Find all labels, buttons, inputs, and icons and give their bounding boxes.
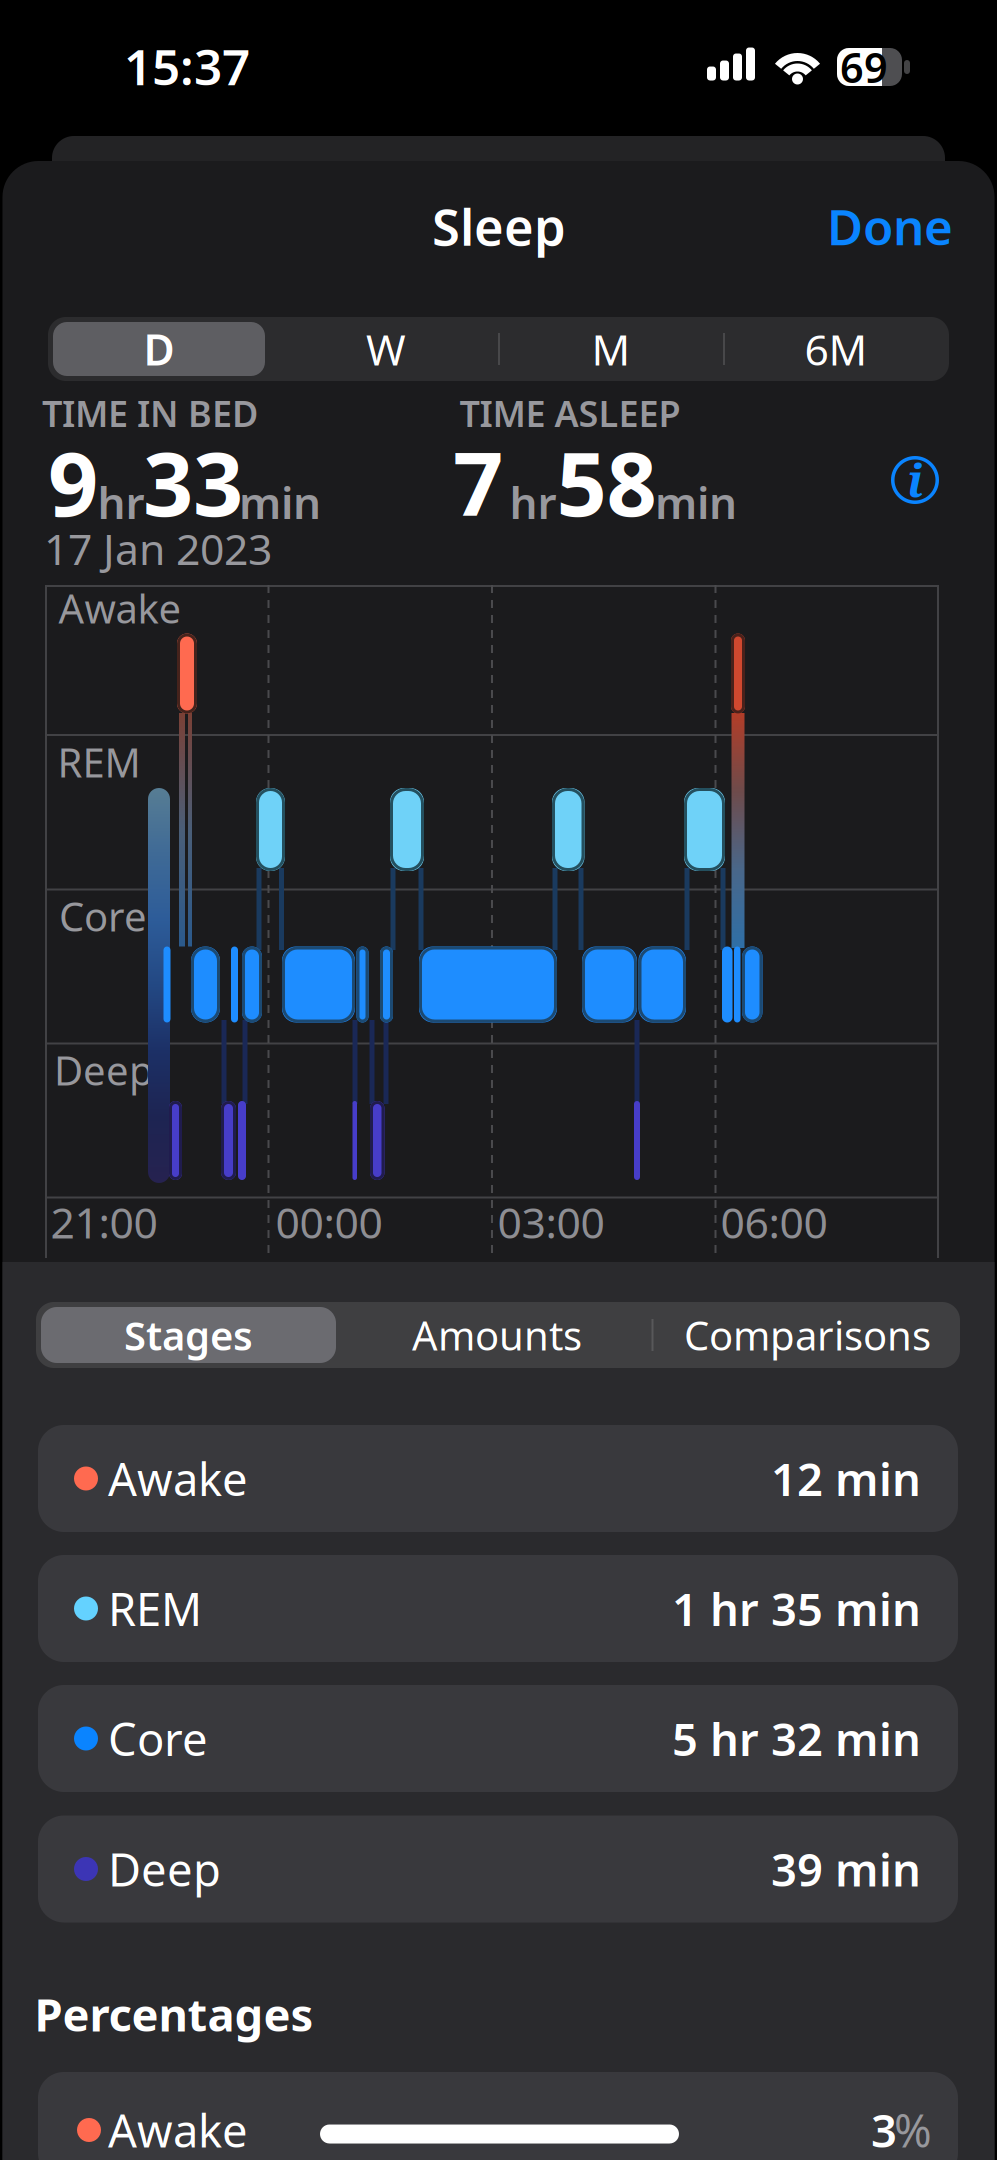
staticText: 33 (143, 424, 243, 540)
staticText: % (894, 2100, 932, 2160)
staticText: 15:37 (124, 33, 250, 99)
staticText: hr (97, 473, 144, 531)
button[interactable]: Comparisons (660, 1307, 955, 1363)
staticText: Stages (124, 1308, 253, 1361)
staticText: 00:00 (275, 1194, 382, 1250)
staticText: 17 Jan 2023 (44, 520, 272, 577)
staticText: Deep (54, 1043, 154, 1096)
staticText: REM (108, 1578, 202, 1639)
staticText: M (591, 321, 630, 377)
staticText: D (143, 321, 174, 377)
staticText: 1 hr 35 min (672, 1578, 921, 1639)
staticText: 3 (871, 2100, 897, 2160)
staticText: Amounts (412, 1308, 582, 1361)
staticText: REM (57, 735, 140, 788)
staticText: Deep (108, 1839, 221, 1899)
button[interactable]: M (505, 322, 717, 376)
button[interactable]: More info (891, 456, 939, 504)
staticText: 12 min (771, 1448, 921, 1509)
staticText: Comparisons (684, 1308, 931, 1361)
button[interactable]: Amounts (349, 1307, 644, 1363)
button[interactable]: Done (0, 0, 997, 280)
staticText: 5 hr 32 min (672, 1708, 921, 1769)
staticText: 21:00 (50, 1194, 157, 1250)
staticText: Core (108, 1708, 208, 1769)
button[interactable]: W (280, 322, 492, 376)
staticText: TIME IN BED (42, 389, 258, 437)
staticText: Awake (108, 1448, 248, 1509)
staticText: 7 (453, 424, 503, 540)
staticText: 69 (840, 40, 888, 94)
staticText: TIME ASLEEP (459, 389, 680, 437)
staticText: Done (827, 193, 953, 259)
button[interactable]: 6M (730, 322, 942, 376)
staticText: Awake (108, 2100, 248, 2160)
staticText: hr (509, 473, 556, 531)
staticText: min (239, 473, 321, 531)
staticText: i (907, 449, 923, 511)
button[interactable]: D (53, 322, 265, 376)
staticText: Sleep (432, 192, 566, 260)
staticText: 03:00 (497, 1194, 604, 1250)
button[interactable]: Stages (41, 1307, 336, 1363)
staticText: min (655, 473, 737, 531)
staticText: W (366, 321, 406, 377)
staticText: Percentages (34, 1984, 313, 2044)
staticText: Core (59, 889, 147, 942)
staticText: 58 (556, 424, 656, 540)
staticText: 6M (804, 321, 867, 377)
staticText: Awake (58, 581, 181, 634)
staticText: 06:00 (720, 1194, 827, 1250)
staticText: 39 min (771, 1839, 921, 1899)
staticText: 9 (48, 424, 98, 540)
